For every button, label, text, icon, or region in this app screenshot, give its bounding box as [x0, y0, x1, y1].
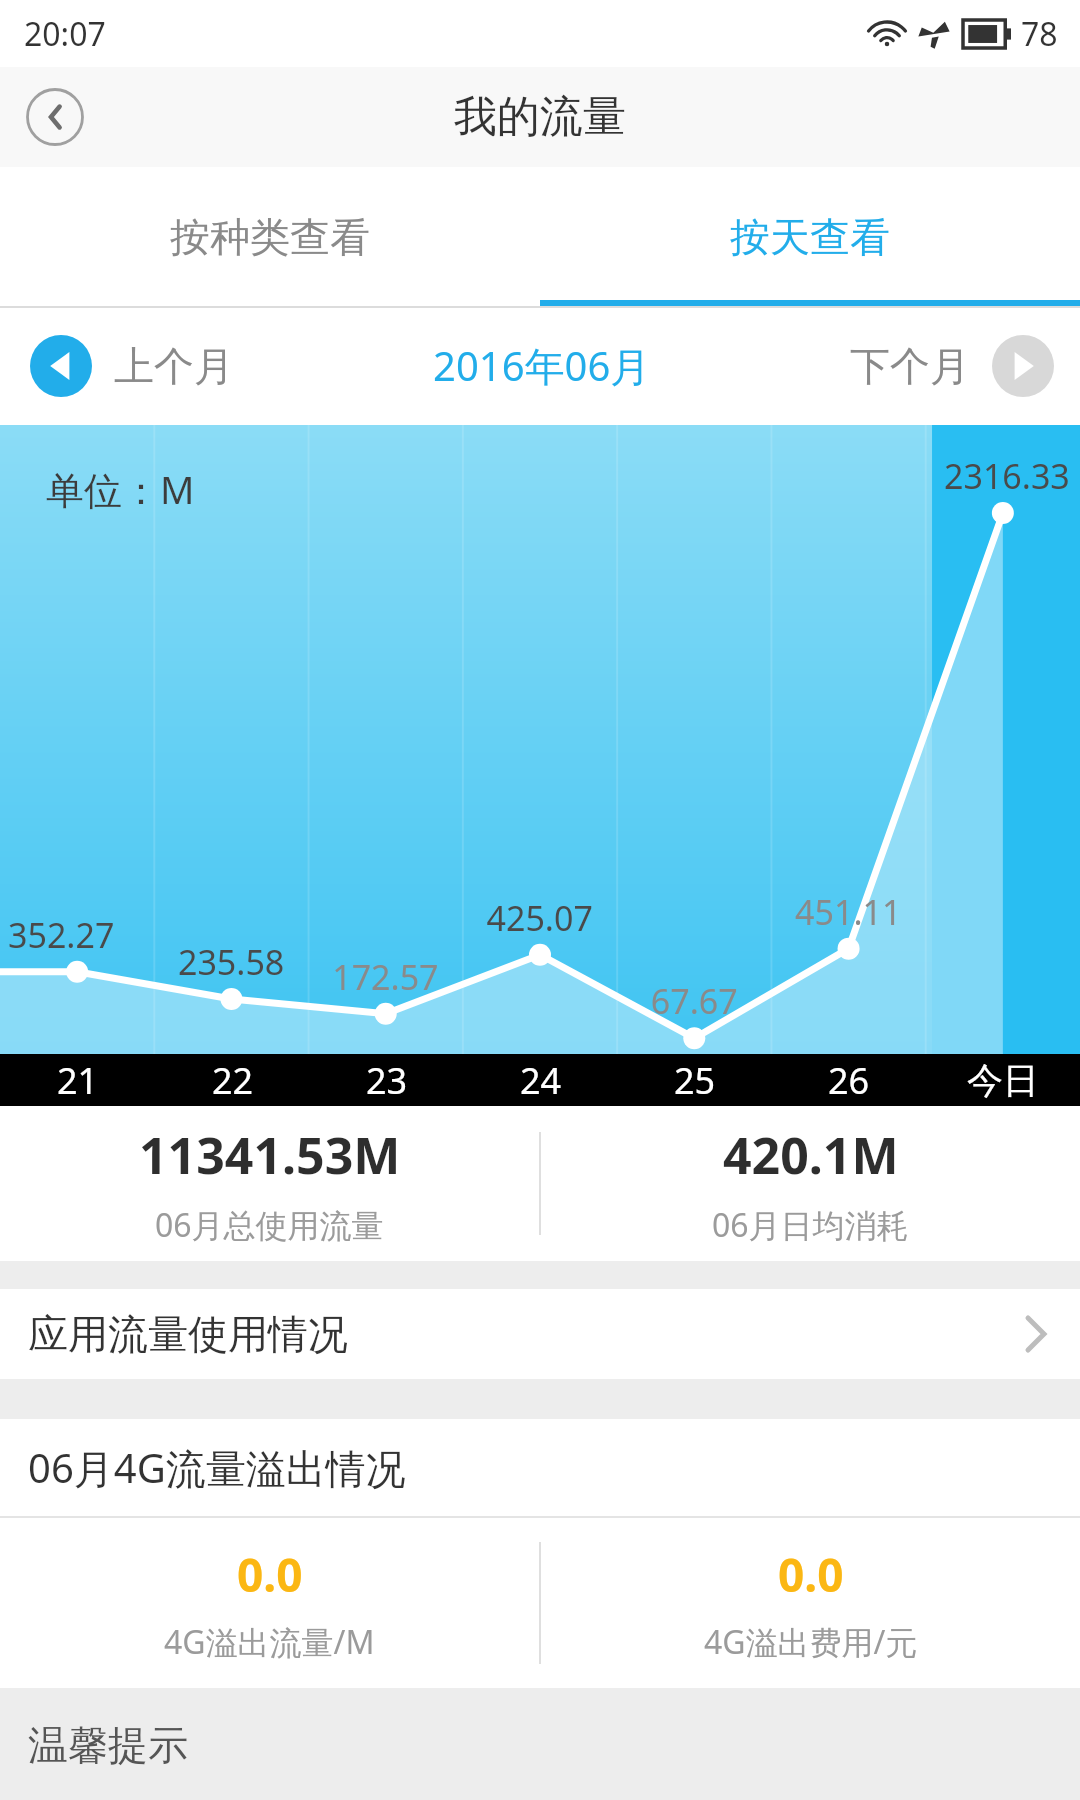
button[interactable]: 下个月 [840, 335, 1080, 397]
staticText: 26 [828, 1056, 870, 1105]
staticText: 应用流量使用情况 [28, 1309, 348, 1359]
staticText: 21 [57, 1056, 99, 1105]
staticText: 22 [212, 1056, 254, 1105]
button[interactable]: Back [26, 88, 84, 146]
staticText: 单位：M [46, 463, 195, 515]
staticText: 0.0 [237, 1543, 303, 1606]
staticText: 今日 [967, 1058, 1039, 1103]
staticText: 23 [366, 1056, 408, 1105]
staticText: 4G溢出流量/M [164, 1620, 375, 1664]
staticText: 11341.53M [139, 1121, 401, 1189]
staticText: 我的流量 [454, 90, 626, 144]
button[interactable]: 按天查看 [540, 167, 1080, 306]
staticText: 420.1M [723, 1121, 899, 1189]
staticText: 按种类查看 [170, 212, 370, 262]
button[interactable]: 上个月 [0, 335, 244, 397]
staticText: 06月总使用流量 [155, 1203, 384, 1247]
staticText: 24 [520, 1056, 562, 1105]
staticText: 06月日均消耗 [712, 1203, 909, 1247]
staticText: 下个月 [850, 341, 970, 391]
staticText: 按天查看 [730, 212, 890, 262]
staticText: 25 [674, 1056, 716, 1105]
staticText: 4G溢出费用/元 [704, 1620, 918, 1664]
button[interactable]: 应用流量使用情况 [0, 1289, 1080, 1379]
staticText: 温馨提示 [28, 1720, 188, 1770]
staticText: 06月4G流量溢出情况 [28, 1440, 406, 1495]
staticText: 上个月 [114, 341, 234, 391]
button[interactable]: 按种类查看 [0, 167, 540, 306]
staticText: 2016年06月 [433, 338, 651, 393]
staticText: 0.0 [778, 1543, 844, 1606]
staticText: 20:07 [24, 12, 106, 56]
staticText: 78 [1021, 12, 1058, 56]
